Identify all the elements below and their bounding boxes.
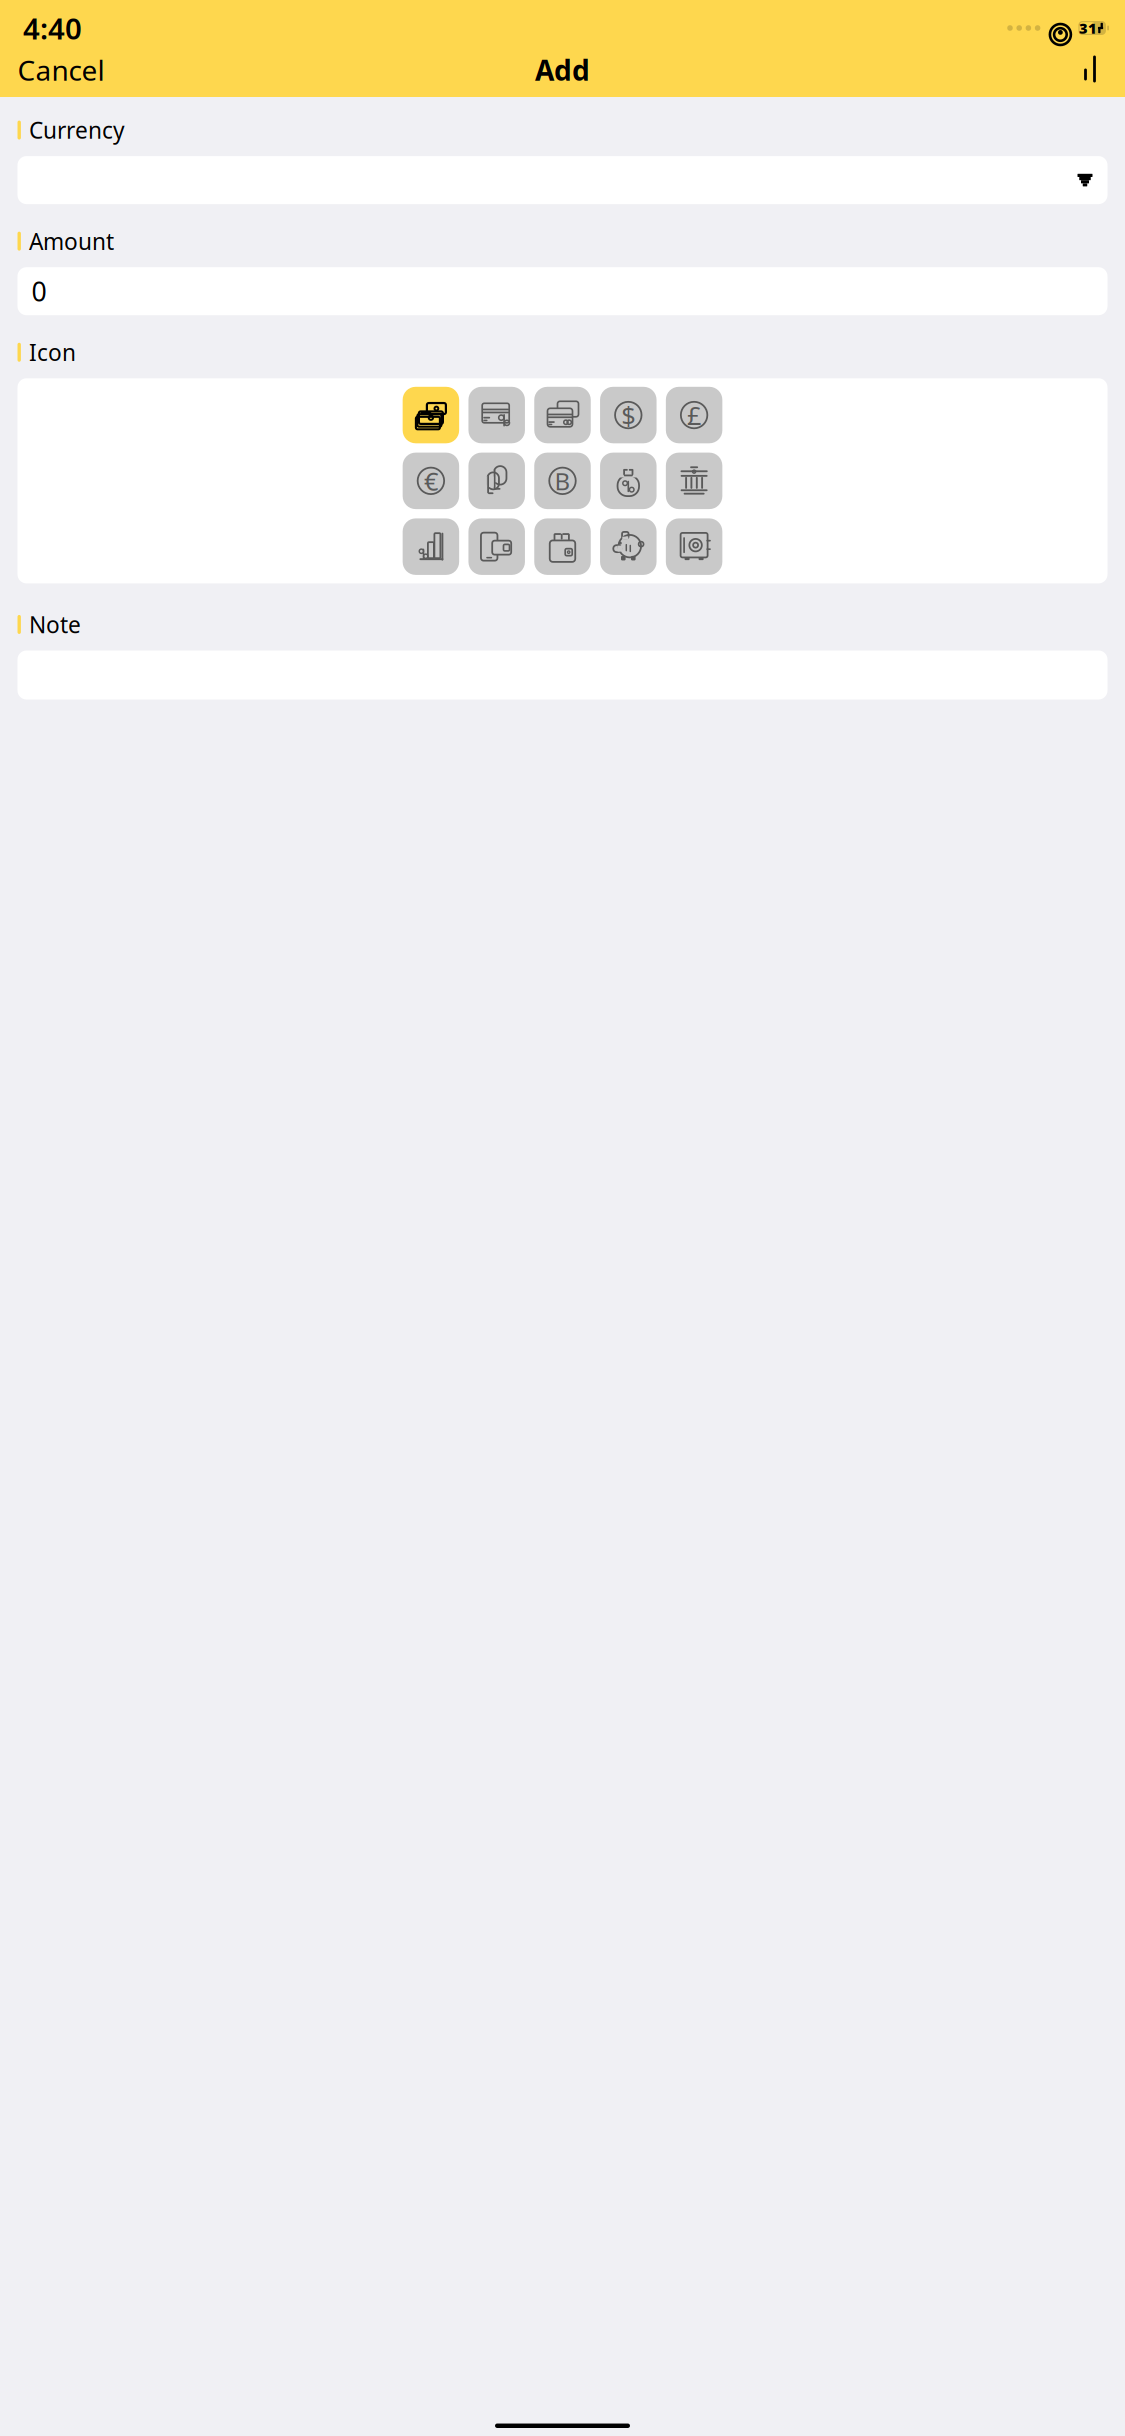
button[interactable]: Safe	[666, 518, 722, 575]
button[interactable]: Wallet	[534, 518, 591, 575]
button[interactable]: PayPal	[468, 453, 525, 509]
staticText: Currency	[29, 115, 125, 145]
button[interactable]: Discount card	[468, 387, 525, 443]
button[interactable]: Save	[1072, 48, 1111, 91]
staticText: £	[687, 398, 701, 432]
staticText: €	[424, 464, 438, 498]
button[interactable]: Investments	[403, 518, 459, 575]
staticText: Amount	[29, 226, 114, 256]
button[interactable]: Cash	[403, 387, 459, 443]
button[interactable]: Credit cards	[534, 387, 591, 443]
staticText: Add	[535, 51, 590, 89]
button[interactable]: Cancel	[13, 40, 108, 100]
staticText: 0	[31, 273, 46, 309]
staticText: Note	[29, 609, 81, 639]
button[interactable]: Mobile wallet	[468, 518, 525, 575]
button[interactable]: British pound	[666, 387, 722, 443]
button[interactable]: Select currency	[17, 156, 1107, 204]
button[interactable]: Euro	[403, 453, 459, 509]
button[interactable]: US dollar	[600, 387, 656, 443]
button[interactable]: Savings	[600, 518, 656, 575]
staticText: 4:40	[23, 8, 82, 47]
staticText: $	[621, 398, 635, 432]
button[interactable]: Money bag	[600, 453, 656, 509]
staticText: B	[554, 465, 570, 497]
button[interactable]: 0	[17, 267, 1107, 315]
staticText: 31	[1079, 18, 1097, 38]
staticText: Cancel	[17, 51, 104, 89]
button[interactable]: Bank	[666, 453, 722, 509]
staticText: Icon	[29, 337, 76, 367]
button[interactable]: Bitcoin	[534, 453, 591, 509]
